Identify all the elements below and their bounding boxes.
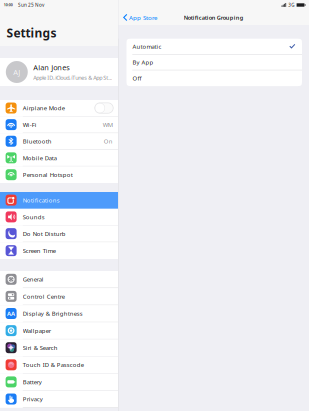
button[interactable]: Siri & Search	[0, 339, 118, 356]
staticText: App Store	[129, 13, 157, 22]
staticText: By App	[132, 58, 153, 66]
staticText: Privacy	[23, 395, 43, 403]
staticText: General	[23, 275, 44, 283]
staticText: Notification Grouping	[184, 14, 244, 21]
staticText: Personal Hotspot	[23, 171, 73, 179]
button[interactable]: By App	[126, 54, 302, 70]
button[interactable]: Off	[126, 70, 302, 86]
staticText: Do Not Disturb	[23, 230, 66, 238]
staticText: Bluetooth	[23, 137, 52, 145]
staticText: On	[104, 137, 113, 145]
button[interactable]: AJ	[0, 58, 118, 86]
staticText: Sun 25 Nov	[18, 2, 44, 8]
button[interactable]: App Store	[118, 10, 157, 25]
button[interactable]: Bluetooth	[0, 133, 118, 150]
button[interactable]: Automatic	[126, 39, 302, 54]
button[interactable]: Privacy	[0, 391, 118, 408]
staticText: AA	[7, 309, 15, 317]
button[interactable]: Personal Hotspot	[0, 166, 118, 183]
staticText: Display & Brightness	[23, 309, 83, 317]
staticText: 3G	[288, 2, 294, 8]
staticText: Control Centre	[23, 292, 65, 300]
button[interactable]: Control Centre	[0, 288, 118, 305]
button[interactable]: Notifications	[0, 192, 118, 209]
staticText: Settings	[6, 25, 56, 41]
staticText: Sounds	[23, 213, 45, 221]
staticText: Battery	[23, 378, 42, 386]
staticText: Siri & Search	[23, 344, 58, 352]
staticText: Mobile Data	[23, 154, 57, 162]
button[interactable]: Wallpaper	[0, 322, 118, 339]
staticText: AJ	[13, 67, 20, 77]
button[interactable]: Screen Time	[0, 242, 118, 259]
staticText: 10:00	[4, 3, 13, 7]
button[interactable]: Wi-Fi	[0, 117, 118, 133]
staticText: Touch ID & Passcode	[23, 361, 84, 369]
button[interactable]: Mobile Data	[0, 150, 118, 166]
staticText: Wi-Fi	[23, 121, 37, 129]
staticText: Wallpaper	[23, 327, 51, 335]
button[interactable]: General	[0, 271, 118, 288]
staticText: Alan Jones	[33, 62, 70, 72]
button[interactable]: AA	[0, 305, 118, 322]
staticText: Apple ID, iCloud, iTunes & App St…	[33, 74, 112, 81]
button[interactable]: Airplane Mode	[0, 100, 118, 117]
button[interactable]: Sounds	[0, 209, 118, 226]
button[interactable]: Do Not Disturb	[0, 225, 118, 242]
staticText: Off	[132, 74, 141, 82]
staticText: Automatic	[132, 42, 161, 50]
staticText: Airplane Mode	[23, 104, 65, 112]
staticText: WM	[103, 121, 113, 129]
staticText: Notifications	[23, 196, 60, 204]
button[interactable]: Touch ID & Passcode	[0, 356, 118, 374]
staticText: Screen Time	[23, 247, 56, 255]
button[interactable]: Battery	[0, 374, 118, 391]
